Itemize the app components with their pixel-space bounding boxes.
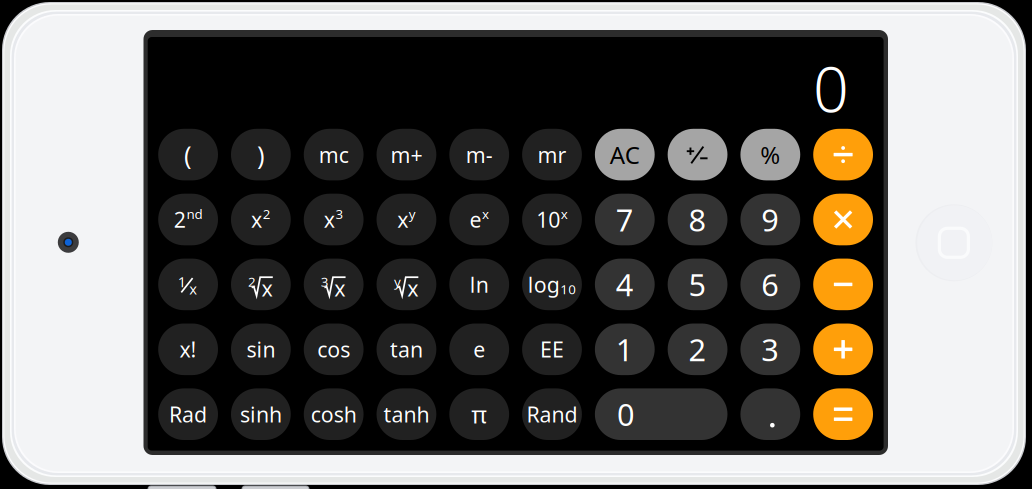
- button[interactable]: tanh: [376, 388, 436, 440]
- button[interactable]: right parenthesis: [231, 129, 291, 180]
- staticText: x: [561, 205, 568, 223]
- button[interactable]: 4: [595, 259, 655, 310]
- staticText: 8: [689, 199, 707, 240]
- staticText: AC: [610, 139, 640, 171]
- button[interactable]: one over x: [158, 259, 218, 310]
- button[interactable]: 2 root of x: [231, 259, 291, 310]
- button[interactable]: 2: [668, 323, 727, 375]
- button[interactable]: m+: [376, 129, 436, 180]
- button[interactable]: 1: [595, 323, 655, 375]
- staticText: Rand: [526, 400, 577, 428]
- button[interactable]: EE: [522, 323, 582, 375]
- staticText: 2: [248, 273, 256, 290]
- button[interactable]: 5: [668, 259, 727, 310]
- staticText: 0: [617, 394, 635, 434]
- button[interactable]: 2 to the nd: [158, 194, 218, 245]
- button[interactable]: x to the 2: [231, 194, 291, 245]
- button[interactable]: decimal point: [740, 388, 800, 440]
- button[interactable]: minus: [813, 259, 873, 310]
- button[interactable]: equals: [813, 388, 873, 440]
- button[interactable]: 3 root of x: [304, 259, 364, 310]
- staticText: 7: [616, 199, 634, 240]
- staticText: m-: [466, 140, 493, 169]
- button[interactable]: %: [740, 129, 800, 180]
- staticText: x: [407, 274, 418, 302]
- button[interactable]: mr: [522, 129, 582, 180]
- staticText: Rad: [169, 400, 207, 428]
- staticText: sinh: [240, 400, 282, 428]
- staticText: 6: [761, 264, 779, 305]
- staticText: x: [262, 274, 273, 302]
- button[interactable]: multiply: [813, 194, 873, 245]
- staticText: 3: [321, 273, 329, 290]
- button[interactable]: cos: [304, 323, 364, 375]
- staticText: (: [184, 138, 192, 171]
- button[interactable]: x to the 3: [304, 194, 364, 245]
- staticText: ): [257, 138, 265, 171]
- button[interactable]: 3: [740, 323, 800, 375]
- staticText: 0: [813, 46, 849, 130]
- staticText: tanh: [383, 400, 429, 428]
- staticText: x!: [180, 335, 197, 363]
- staticText: 2: [689, 329, 707, 370]
- button[interactable]: 9: [740, 194, 800, 245]
- button[interactable]: 7: [595, 194, 655, 245]
- staticText: %: [760, 139, 780, 171]
- button[interactable]: pi: [449, 388, 509, 440]
- staticText: 3: [761, 329, 779, 370]
- staticText: cosh: [311, 400, 357, 428]
- staticText: x: [324, 205, 335, 234]
- button[interactable]: 10 to the x: [522, 194, 582, 245]
- staticText: e: [473, 335, 485, 363]
- button[interactable]: plus minus: [668, 129, 727, 180]
- button[interactable]: log 10: [522, 259, 582, 310]
- staticText: 10: [560, 280, 576, 298]
- staticText: 10: [536, 205, 560, 234]
- button[interactable]: mc: [304, 129, 364, 180]
- staticText: 2: [263, 205, 271, 223]
- staticText: x: [334, 274, 345, 302]
- staticText: log: [528, 270, 560, 298]
- staticText: x: [189, 279, 197, 298]
- staticText: 5: [689, 264, 707, 305]
- button[interactable]: y root of x: [376, 259, 436, 310]
- button[interactable]: 8: [668, 194, 727, 245]
- staticText: nd: [186, 205, 202, 223]
- button[interactable]: AC: [595, 129, 655, 180]
- button[interactable]: x to the y: [376, 194, 436, 245]
- button[interactable]: divide: [813, 129, 873, 180]
- staticText: x: [251, 205, 262, 234]
- button[interactable]: x factorial: [158, 323, 218, 375]
- staticText: x: [482, 205, 489, 223]
- button[interactable]: plus: [813, 323, 873, 375]
- staticText: π: [471, 398, 487, 430]
- button[interactable]: tan: [376, 323, 436, 375]
- staticText: cos: [317, 335, 350, 363]
- button[interactable]: ln: [449, 259, 509, 310]
- staticText: ln: [470, 270, 489, 298]
- button[interactable]: e: [449, 323, 509, 375]
- staticText: mr: [537, 140, 566, 169]
- button[interactable]: Rad: [158, 388, 218, 440]
- button[interactable]: e to the x: [449, 194, 509, 245]
- staticText: 4: [616, 264, 634, 305]
- staticText: 1: [616, 329, 634, 370]
- staticText: 3: [335, 205, 343, 223]
- staticText: 9: [761, 199, 779, 240]
- staticText: y: [409, 205, 416, 223]
- staticText: 2: [174, 205, 186, 234]
- button[interactable]: 0: [595, 388, 727, 440]
- button[interactable]: sin: [231, 323, 291, 375]
- button[interactable]: Rand: [522, 388, 582, 440]
- staticText: EE: [540, 335, 564, 363]
- staticText: 1: [178, 272, 186, 291]
- button[interactable]: m-: [449, 129, 509, 180]
- staticText: e: [469, 205, 481, 234]
- staticText: m+: [390, 140, 422, 169]
- staticText: tan: [390, 335, 423, 363]
- button[interactable]: left parenthesis: [158, 129, 218, 180]
- button[interactable]: sinh: [231, 388, 291, 440]
- button[interactable]: 6: [740, 259, 800, 310]
- button[interactable]: cosh: [304, 388, 364, 440]
